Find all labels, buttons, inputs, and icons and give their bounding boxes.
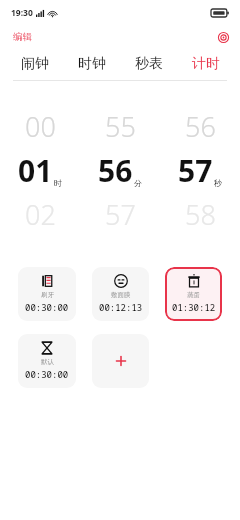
button[interactable]: 蒸蛋 — [165, 267, 222, 321]
staticText: 计时 — [192, 55, 220, 73]
staticText: 00:12:13 — [99, 301, 143, 313]
staticText: 01:30:12 — [172, 301, 216, 313]
button[interactable]: Settings — [207, 29, 240, 46]
staticText: 02 — [25, 196, 56, 233]
button[interactable]: 时钟 — [63, 48, 120, 80]
button[interactable]: 计时 — [177, 48, 234, 80]
staticText: 19:30 — [11, 7, 33, 19]
button[interactable]: 55 — [80, 105, 160, 235]
staticText: 58 — [185, 196, 216, 233]
staticText: 默认 — [41, 358, 54, 366]
staticText: 编辑 — [13, 31, 32, 43]
staticText: 时 — [54, 178, 62, 188]
staticText: 00:30:00 — [25, 368, 69, 380]
staticText: 分 — [134, 178, 142, 188]
button[interactable]: 默认 — [18, 334, 76, 388]
staticText: 00 — [25, 108, 56, 145]
staticText: 时钟 — [78, 55, 106, 73]
staticText: 56 — [98, 150, 133, 191]
staticText: 56 — [185, 108, 216, 145]
staticText: 55 — [105, 108, 136, 145]
staticText: 刷牙 — [41, 291, 54, 299]
staticText: 闹钟 — [21, 55, 49, 73]
button[interactable]: 敷面膜 — [92, 267, 149, 321]
staticText: 蒸蛋 — [187, 291, 200, 299]
staticText: 57 — [105, 196, 136, 233]
staticText: 秒 — [214, 178, 222, 188]
button[interactable]: Add timer — [92, 334, 149, 388]
staticText: 00:30:00 — [25, 301, 69, 313]
button[interactable]: 00 — [0, 105, 80, 235]
staticText: 57 — [178, 150, 213, 191]
button[interactable]: 编辑 — [0, 28, 45, 46]
button[interactable]: 闹钟 — [6, 48, 63, 80]
staticText: 01 — [18, 150, 53, 191]
button[interactable]: 刷牙 — [18, 267, 76, 321]
staticText: 敷面膜 — [111, 291, 131, 299]
button[interactable]: 秒表 — [120, 48, 177, 80]
staticText: 秒表 — [135, 55, 163, 73]
button[interactable]: 56 — [160, 105, 240, 235]
